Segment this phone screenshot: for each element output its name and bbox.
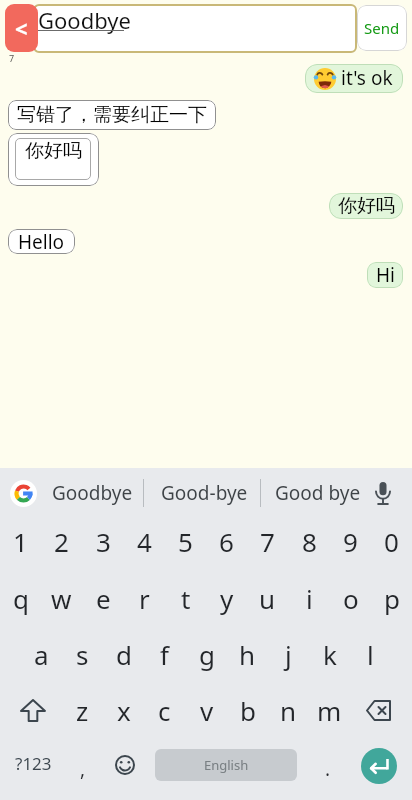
staticText: l — [367, 637, 374, 672]
staticText: Goodbye — [52, 480, 133, 506]
button[interactable]: a — [21, 626, 62, 682]
button[interactable]: 3 — [83, 513, 124, 569]
button[interactable] — [361, 748, 397, 784]
staticText: 6 — [219, 524, 234, 559]
staticText: e — [96, 581, 111, 616]
button[interactable]: ?123 — [6, 741, 61, 785]
staticText: c — [158, 693, 171, 728]
staticText: v — [200, 693, 214, 728]
staticText: 1 — [13, 524, 28, 559]
staticText: q — [13, 581, 29, 616]
button[interactable] — [106, 744, 144, 786]
button[interactable]: 写错了，需要纠正一下 — [8, 100, 216, 130]
button[interactable]: 2 — [41, 513, 82, 569]
button[interactable]: Hi — [367, 262, 403, 288]
button[interactable]: j — [268, 626, 309, 682]
staticText: t — [181, 581, 191, 616]
staticText: . — [325, 756, 331, 782]
button[interactable]: 5 — [165, 513, 206, 569]
button[interactable]: b — [227, 682, 268, 738]
button[interactable] — [10, 480, 37, 507]
button[interactable]: t — [165, 570, 206, 626]
button[interactable]: i — [289, 570, 330, 626]
button[interactable]: k — [309, 626, 350, 682]
staticText: 5 — [178, 524, 193, 559]
staticText: < — [15, 13, 28, 43]
button[interactable]: 4 — [124, 513, 165, 569]
button[interactable]: it's ok — [305, 64, 403, 93]
button[interactable]: d — [103, 626, 144, 682]
staticText: y — [220, 581, 234, 616]
button[interactable]: 1 — [0, 513, 41, 569]
staticText: 8 — [302, 524, 317, 559]
staticText: i — [306, 581, 313, 616]
staticText: 9 — [343, 524, 358, 559]
button[interactable]: 你好吗 — [8, 133, 99, 186]
button[interactable]: x — [103, 682, 144, 738]
button[interactable]: . — [313, 747, 343, 791]
button[interactable] — [356, 682, 402, 738]
staticText: 3 — [96, 524, 111, 559]
staticText: 你好吗 — [25, 139, 82, 163]
button[interactable]: 7 — [247, 513, 288, 569]
button[interactable] — [372, 482, 394, 506]
button[interactable]: c — [144, 682, 185, 738]
staticText: it's ok — [341, 65, 393, 91]
button[interactable]: < — [5, 4, 38, 52]
staticText: u — [259, 581, 276, 616]
button[interactable]: Good-bye — [148, 471, 260, 515]
staticText: m — [317, 693, 342, 728]
staticText: 4 — [137, 524, 152, 559]
button[interactable]: y — [206, 570, 247, 626]
button[interactable]: z — [62, 682, 103, 738]
button[interactable]: 你好吗 — [329, 193, 403, 219]
button[interactable]: Good bye — [262, 471, 374, 515]
staticText: Good-bye — [161, 480, 248, 506]
button[interactable]: l — [350, 626, 391, 682]
staticText: 7 — [9, 52, 15, 64]
button[interactable]: f — [144, 626, 185, 682]
staticText: b — [240, 693, 256, 728]
button[interactable]: English — [155, 749, 297, 781]
staticText: 7 — [260, 524, 275, 559]
staticText: 你好吗 — [338, 194, 395, 218]
button[interactable]: e — [83, 570, 124, 626]
button[interactable]: 8 — [289, 513, 330, 569]
button[interactable]: h — [227, 626, 268, 682]
staticText: Hi — [376, 262, 395, 288]
button[interactable]: o — [330, 570, 371, 626]
staticText: z — [76, 693, 89, 728]
button[interactable]: g — [186, 626, 227, 682]
button[interactable]: Goodbye — [32, 471, 152, 515]
staticText: d — [116, 637, 132, 672]
button[interactable] — [10, 682, 55, 738]
button[interactable]: Hello — [8, 229, 75, 254]
staticText: a — [34, 637, 49, 672]
staticText: , — [80, 756, 86, 782]
button[interactable]: 0 — [371, 513, 412, 569]
button[interactable]: r — [124, 570, 165, 626]
button[interactable]: u — [247, 570, 288, 626]
button[interactable]: , — [68, 747, 98, 791]
staticText: f — [160, 637, 169, 672]
button[interactable]: s — [62, 626, 103, 682]
staticText: English — [204, 756, 249, 774]
button[interactable]: Send — [357, 5, 407, 51]
staticText: 2 — [54, 524, 69, 559]
staticText: 写错了，需要纠正一下 — [17, 103, 207, 127]
staticText: Goodbye — [38, 5, 131, 35]
staticText: n — [280, 693, 297, 728]
button[interactable]: p — [371, 570, 412, 626]
button[interactable]: n — [268, 682, 309, 738]
button[interactable]: Goodbye — [33, 4, 357, 53]
button[interactable]: w — [41, 570, 82, 626]
button[interactable]: q — [0, 570, 41, 626]
button[interactable]: v — [186, 682, 227, 738]
staticText: Hello — [18, 229, 65, 254]
staticText: o — [343, 581, 359, 616]
staticText: j — [285, 637, 292, 672]
button[interactable]: m — [309, 682, 350, 738]
button[interactable]: 9 — [330, 513, 371, 569]
staticText: x — [117, 693, 131, 728]
button[interactable]: 6 — [206, 513, 247, 569]
